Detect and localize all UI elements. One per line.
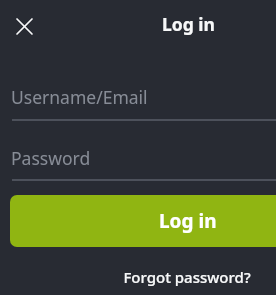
button[interactable]: Log in — [10, 195, 276, 247]
staticText: Username/Email — [11, 85, 148, 109]
button[interactable] — [8, 10, 40, 42]
staticText: Forgot password? — [123, 267, 251, 287]
button[interactable]: Forgot password? — [112, 262, 262, 292]
staticText: Log in — [159, 208, 217, 234]
button[interactable]: Username/Email — [11, 80, 276, 121]
staticText: Password — [11, 146, 91, 170]
staticText: Log in — [162, 12, 215, 36]
button[interactable]: Password — [11, 141, 276, 182]
